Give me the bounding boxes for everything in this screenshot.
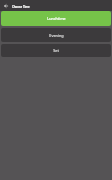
button[interactable]: Lunchtime xyxy=(1,11,111,26)
staticText: Set xyxy=(53,48,59,53)
staticText: Lunchtime xyxy=(47,16,66,21)
button[interactable]: Back xyxy=(2,2,9,9)
button[interactable]: Set xyxy=(1,44,111,57)
staticText: Evening xyxy=(49,33,64,38)
button[interactable]: Evening xyxy=(1,28,111,42)
staticText: Choose Time xyxy=(12,5,30,9)
